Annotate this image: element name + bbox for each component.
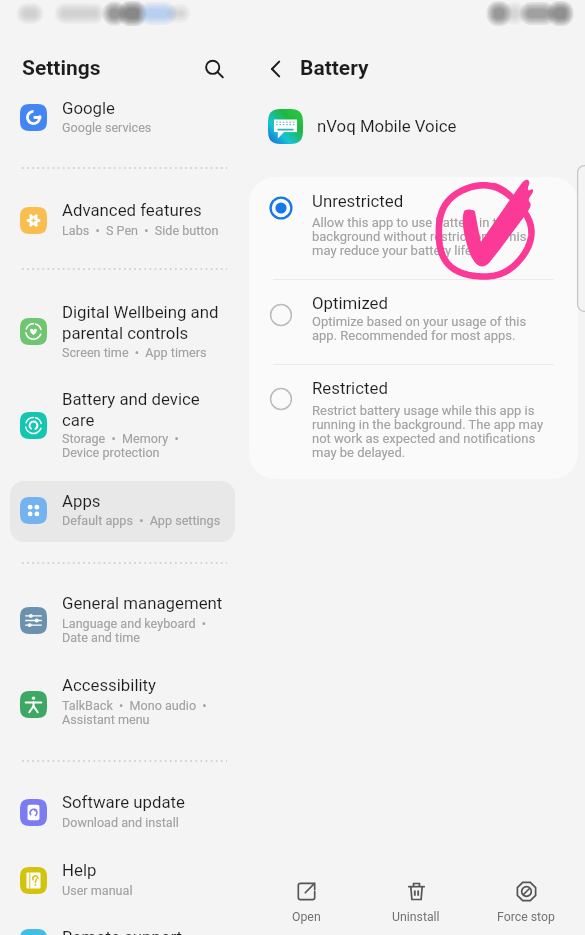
staticText: Google bbox=[62, 98, 116, 118]
staticText: Uninstall bbox=[392, 910, 440, 924]
staticText: Battery and device care bbox=[62, 389, 200, 430]
button[interactable]: Back bbox=[259, 52, 293, 86]
staticText: Unrestricted bbox=[312, 191, 404, 211]
staticText: Force stop bbox=[497, 910, 555, 924]
staticText: Accessibility bbox=[62, 675, 156, 695]
button[interactable]: Optimized bbox=[249, 279, 578, 364]
staticText: Google services bbox=[62, 120, 152, 135]
staticText: Digital Wellbeing and parental controls bbox=[62, 302, 219, 343]
staticText: Labs • S Pen • Side button bbox=[62, 223, 219, 238]
staticText: Screen time • App timers bbox=[62, 345, 207, 360]
button[interactable]: Unrestricted bbox=[249, 177, 578, 279]
button[interactable]: Force stop bbox=[474, 872, 578, 932]
button[interactable]: Restricted bbox=[249, 364, 578, 476]
staticText: Restrict battery usage while this app is… bbox=[312, 403, 544, 460]
staticText: Download and install bbox=[62, 815, 179, 830]
staticText: TalkBack • Mono audio • Assistant menu bbox=[62, 698, 207, 727]
staticText: Remote support bbox=[62, 927, 183, 935]
staticText: Default apps • App settings bbox=[62, 513, 221, 528]
staticText: General management bbox=[62, 593, 223, 613]
button[interactable]: Search bbox=[197, 52, 229, 84]
staticText: Help bbox=[62, 860, 97, 880]
staticText: Open bbox=[292, 910, 321, 924]
button[interactable]: Open bbox=[254, 872, 358, 932]
button[interactable] bbox=[10, 481, 235, 542]
staticText: Apps bbox=[62, 491, 101, 511]
staticText: Optimized bbox=[312, 293, 388, 313]
button[interactable]: Uninstall bbox=[364, 872, 468, 932]
staticText: Optimize based on your usage of this app… bbox=[312, 314, 527, 343]
staticText: Battery bbox=[300, 56, 369, 81]
staticText: Restricted bbox=[312, 378, 388, 398]
staticText: Advanced features bbox=[62, 200, 202, 220]
staticText: Software update bbox=[62, 792, 185, 812]
staticText: Settings bbox=[22, 56, 101, 81]
staticText: Language and keyboard • Date and time bbox=[62, 616, 207, 645]
staticText: User manual bbox=[62, 883, 133, 898]
staticText: nVoq Mobile Voice bbox=[317, 116, 457, 136]
staticText: Storage • Memory • Device protection bbox=[62, 431, 179, 460]
staticText: Allow this app to use battery in the bac… bbox=[312, 215, 527, 258]
